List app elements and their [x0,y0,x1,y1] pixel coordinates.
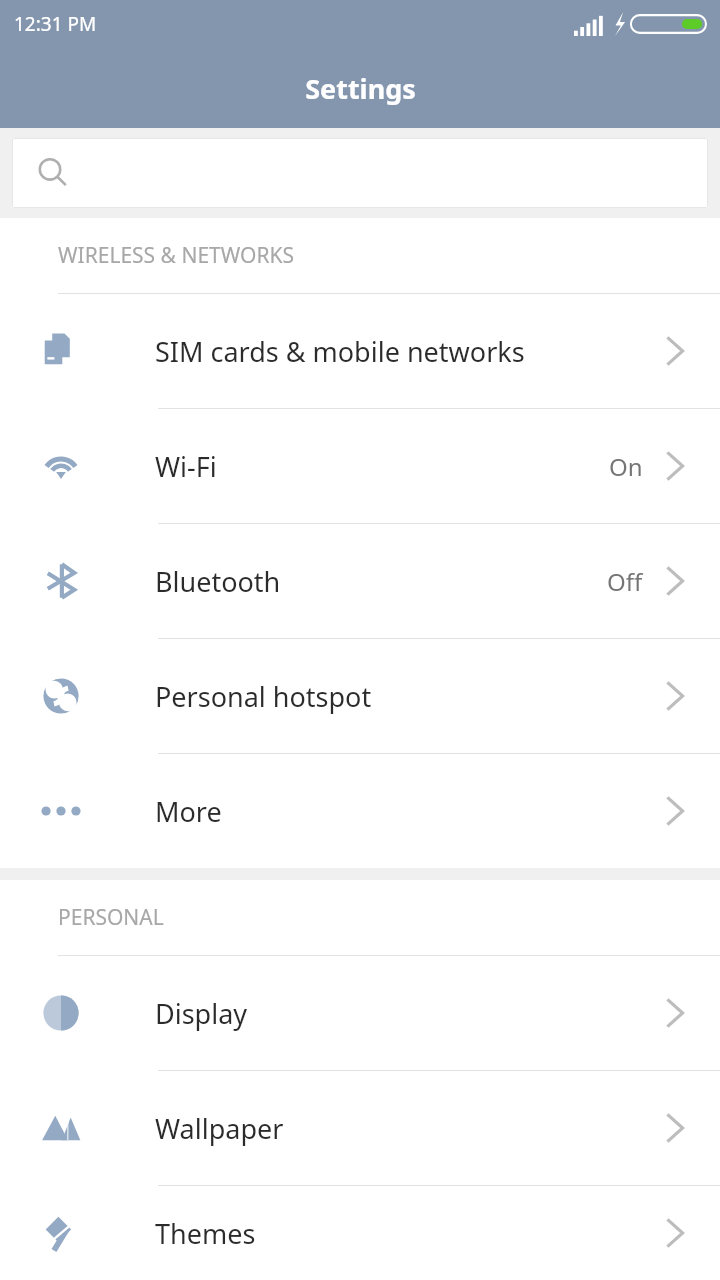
button[interactable]: Bluetooth [0,524,720,638]
staticText: 12:31 PM [14,11,97,37]
staticText: Wi-Fi [155,448,609,485]
button[interactable]: SIM cards & mobile networks [0,294,720,408]
staticText: SIM cards & mobile networks [155,333,665,370]
button[interactable]: Wallpaper [0,1071,720,1185]
staticText: WIRELESS & NETWORKS [58,241,295,270]
staticText: Bluetooth [155,563,607,600]
staticText: PERSONAL [58,903,164,932]
staticText: Settings [305,70,416,107]
staticText: More [155,793,665,830]
staticText: Themes [155,1215,665,1252]
staticText: Personal hotspot [155,678,665,715]
button[interactable]: Themes [0,1186,720,1280]
button[interactable]: Wi-Fi [0,409,720,523]
staticText: Off [607,565,643,598]
button[interactable]: Display [0,956,720,1070]
staticText: Wallpaper [155,1110,665,1147]
staticText: Display [155,995,665,1032]
button[interactable]: Personal hotspot [0,639,720,753]
staticText: On [609,450,643,483]
button[interactable]: More [0,754,720,868]
button[interactable]: Search settings [12,138,708,208]
